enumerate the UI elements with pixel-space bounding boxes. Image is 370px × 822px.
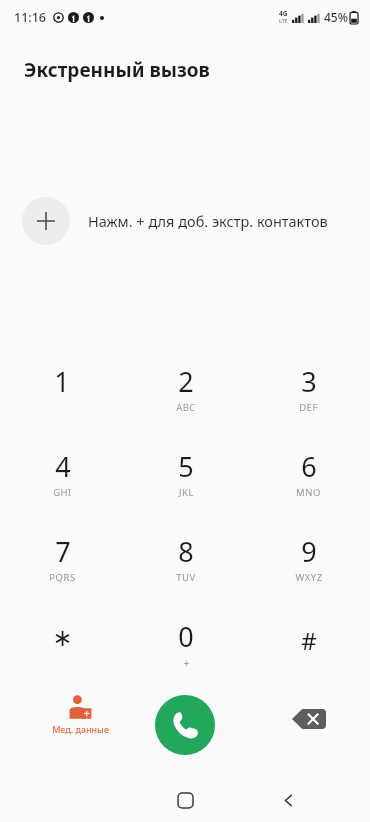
staticText: 3 bbox=[301, 363, 317, 400]
staticText: 7 bbox=[55, 533, 71, 570]
staticText: + bbox=[183, 656, 190, 670]
button[interactable]: 2 bbox=[124, 355, 247, 440]
button[interactable]: Backspace bbox=[292, 706, 326, 732]
staticText: 2 bbox=[178, 363, 194, 400]
staticText: 11:16 bbox=[14, 9, 47, 26]
staticText: WXYZ bbox=[295, 571, 323, 584]
button[interactable]: 8 bbox=[124, 525, 247, 610]
staticText: MNO bbox=[296, 486, 321, 499]
staticText: 1 bbox=[54, 363, 70, 400]
staticText: GHI bbox=[53, 486, 72, 499]
staticText: # bbox=[301, 624, 317, 657]
button[interactable]: 9 bbox=[247, 525, 370, 610]
staticText: 9 bbox=[301, 533, 317, 570]
button[interactable]: 5 bbox=[124, 440, 247, 525]
staticText: ABC bbox=[176, 401, 196, 414]
staticText: 45% bbox=[324, 9, 348, 25]
button[interactable]: 7 bbox=[0, 525, 124, 610]
button[interactable]: Мед. данные bbox=[30, 694, 130, 735]
button[interactable]: Call bbox=[155, 695, 215, 755]
staticText: JKL bbox=[179, 486, 194, 499]
staticText: 4G bbox=[279, 9, 288, 18]
staticText: 4 bbox=[55, 448, 71, 485]
staticText: DEF bbox=[299, 401, 318, 414]
button[interactable]: 0 bbox=[124, 610, 247, 684]
staticText: LTE bbox=[279, 18, 288, 25]
button[interactable]: Home bbox=[163, 778, 207, 822]
staticText: 5 bbox=[178, 448, 194, 485]
staticText: 8 bbox=[178, 533, 194, 570]
staticText: Мед. данные bbox=[52, 723, 109, 735]
staticText: PQRS bbox=[49, 571, 76, 584]
button[interactable]: Нажм. + для доб. экстр. контактов bbox=[0, 190, 370, 252]
staticText: Нажм. + для доб. экстр. контактов bbox=[88, 211, 328, 231]
staticText: ∗ bbox=[52, 624, 73, 652]
button[interactable]: Back bbox=[266, 778, 310, 822]
button[interactable]: ∗ bbox=[0, 610, 124, 684]
button[interactable]: 1 bbox=[0, 355, 124, 440]
staticText: 0 bbox=[178, 618, 194, 655]
staticText: Экстренный вызов bbox=[24, 57, 210, 83]
button[interactable]: 3 bbox=[247, 355, 370, 440]
button[interactable]: 4 bbox=[0, 440, 124, 525]
staticText: TUV bbox=[176, 571, 196, 584]
staticText: 6 bbox=[301, 448, 317, 485]
button[interactable]: # bbox=[247, 610, 370, 684]
button[interactable]: 6 bbox=[247, 440, 370, 525]
